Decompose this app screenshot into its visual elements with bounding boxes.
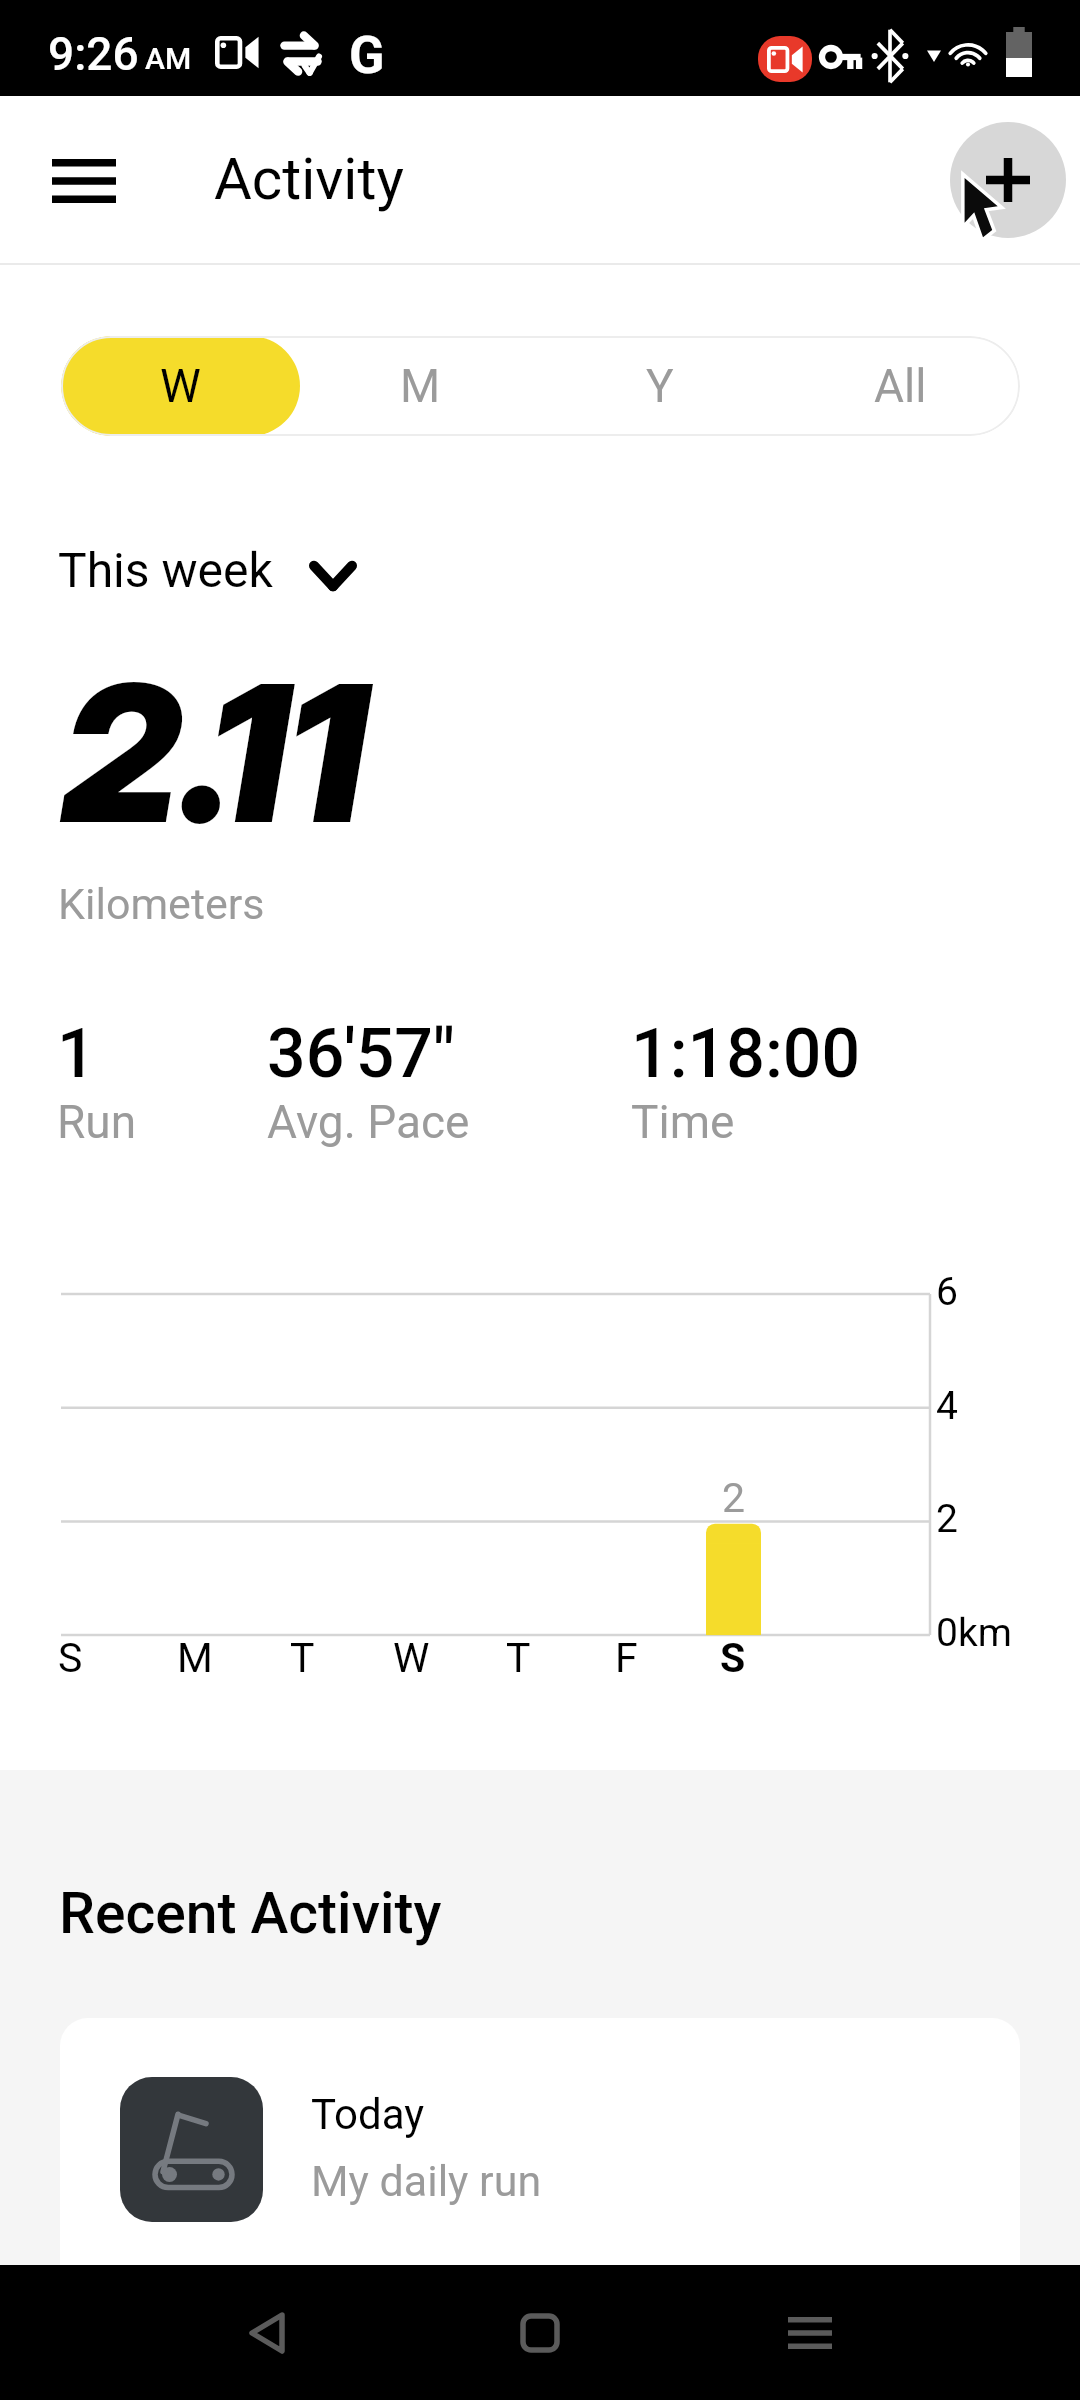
staticText: 36'57" [267,1014,455,1094]
staticText: W [160,359,201,413]
staticText: My daily run [311,2156,542,2206]
button[interactable]: W [61,336,300,436]
button[interactable]: Today [60,2018,1020,2265]
button[interactable]: Add activity [950,122,1066,238]
staticText: Today [311,2090,425,2139]
button[interactable]: Back [207,2265,327,2400]
staticText: Time [631,1095,735,1149]
staticText: All [874,359,927,413]
staticText: S [720,1634,746,1682]
staticText: F [615,1634,638,1682]
staticText: Activity [214,145,404,213]
staticText: 4 [936,1383,958,1429]
staticText: T [290,1634,315,1682]
staticText: Recent Activity [59,1880,442,1947]
staticText: AM [145,41,192,76]
button[interactable]: Y [540,336,780,436]
staticText: Avg. Pace [267,1095,470,1149]
button[interactable]: This week [45,524,375,620]
button[interactable]: Recent apps [750,2265,870,2400]
button[interactable]: All [780,336,1020,436]
staticText: 6 [936,1269,958,1315]
staticText: 2 [936,1496,958,1542]
staticText: 0km [936,1610,1012,1656]
staticText: W [393,1634,430,1682]
staticText: 2.11 [61,638,366,868]
staticText: This week [58,542,273,598]
staticText: M [177,1634,213,1682]
staticText: 1 [57,1014,96,1094]
staticText: M [400,359,441,413]
button[interactable]: Open navigation menu [32,139,136,223]
staticText: T [506,1634,531,1682]
staticText: Run [57,1095,137,1149]
staticText: 9:26 [48,27,139,81]
staticText: Kilometers [58,879,265,929]
button[interactable]: M [300,336,540,436]
staticText: 1:18:00 [631,1014,861,1094]
staticText: 2 [722,1474,746,1522]
button[interactable]: Home [480,2265,600,2400]
staticText: G [349,25,385,86]
staticText: S [58,1634,83,1682]
staticText: Y [646,359,674,413]
